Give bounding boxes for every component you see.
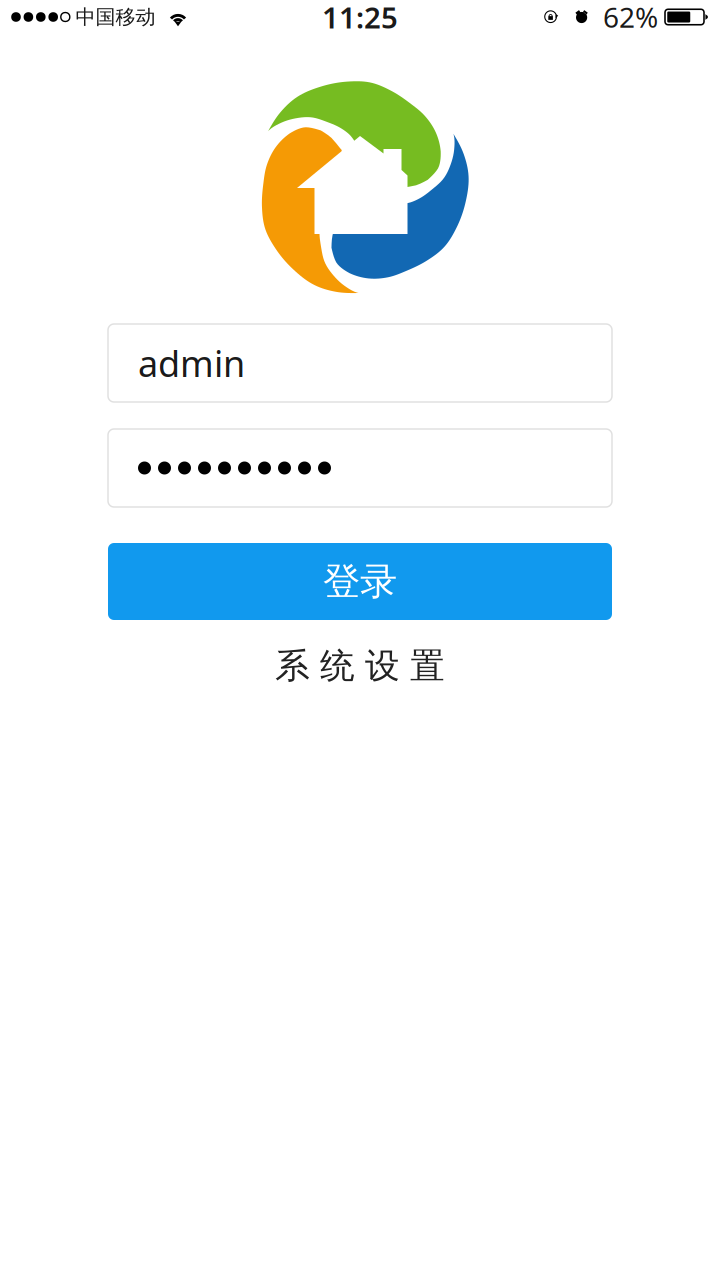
- staticText: 中国移动: [75, 5, 155, 29]
- staticText: 登录: [323, 559, 397, 604]
- staticText: admin: [138, 339, 245, 387]
- staticText: 62%: [603, 0, 658, 36]
- button[interactable]: 登录: [108, 543, 612, 620]
- staticText: 系 统 设 置: [275, 645, 445, 687]
- staticText: 11:25: [322, 0, 398, 36]
- button[interactable]: 系 统 设 置: [108, 646, 612, 686]
